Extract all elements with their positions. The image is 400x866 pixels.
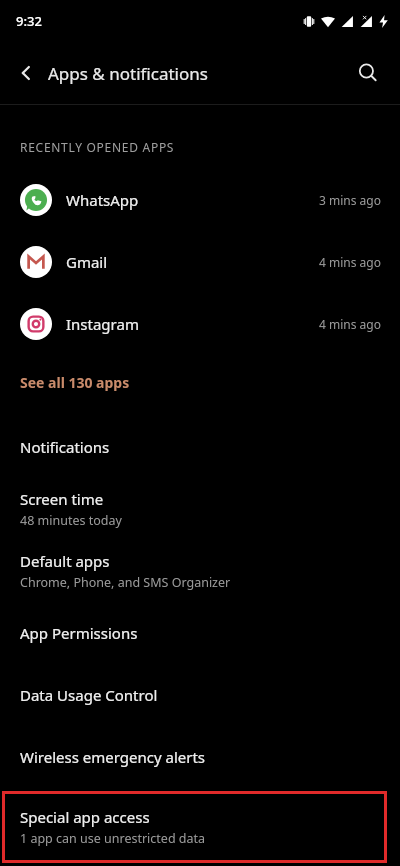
button[interactable]: Screen time (0, 478, 400, 540)
button[interactable]: Wireless emergency alerts (0, 726, 400, 788)
staticText: Instagram (66, 314, 139, 334)
button[interactable]: App Permissions (0, 602, 400, 664)
staticText: 1 app can use unrestricted data (20, 830, 206, 847)
staticText: Special app access (20, 807, 150, 827)
staticText: Apps & notifications (48, 62, 208, 85)
button[interactable]: Back (8, 55, 44, 91)
staticText: Chrome, Phone, and SMS Organizer (20, 574, 231, 591)
staticText: WhatsApp (66, 190, 139, 210)
staticText: Notifications (20, 437, 110, 457)
staticText: 3 mins ago (319, 192, 381, 208)
staticText: Data Usage Control (20, 685, 158, 705)
staticText: 4 mins ago (319, 254, 381, 270)
staticText: RECENTLY OPENED APPS (20, 139, 175, 155)
button[interactable]: Search (348, 53, 388, 93)
button[interactable]: Data Usage Control (0, 664, 400, 726)
button[interactable]: Default apps (0, 540, 400, 602)
staticText: Screen time (20, 489, 104, 509)
staticText: 48 minutes today (20, 512, 122, 529)
button[interactable]: Instagram (0, 293, 400, 355)
staticText: 4 mins ago (319, 316, 381, 332)
staticText: Wireless emergency alerts (20, 747, 206, 767)
staticText: See all 130 apps (20, 373, 130, 392)
staticText: Gmail (66, 252, 108, 272)
staticText: App Permissions (20, 623, 138, 643)
button[interactable]: Gmail (0, 231, 400, 293)
staticText: 9:32 (16, 12, 42, 30)
button[interactable]: Special app access (2, 791, 387, 863)
button[interactable]: See all 130 apps (0, 369, 400, 396)
staticText: Default apps (20, 551, 110, 571)
button[interactable]: Notifications (0, 416, 400, 478)
button[interactable]: WhatsApp (0, 169, 400, 231)
